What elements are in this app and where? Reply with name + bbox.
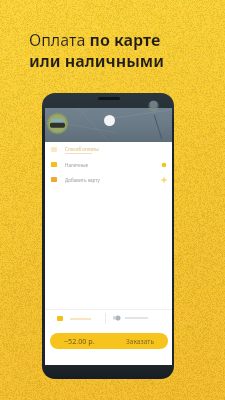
button[interactable]: My location	[104, 115, 115, 126]
button[interactable]	[57, 316, 91, 321]
button[interactable]: Способ оплаты	[45, 142, 172, 157]
staticText: или наличными	[29, 50, 165, 72]
button[interactable]: Добавить карту	[45, 172, 172, 187]
button[interactable]: Наличные	[45, 157, 172, 172]
staticText: Способ оплаты	[65, 146, 99, 152]
staticText: Оплата по карте	[29, 29, 161, 51]
button[interactable]: ~52.00 р.	[50, 333, 168, 349]
button[interactable]	[113, 315, 148, 321]
staticText: Заказать	[126, 337, 154, 346]
staticText: ~52.00 р.	[64, 336, 95, 346]
staticText: Наличные	[65, 162, 89, 168]
staticText: Добавить карту	[65, 177, 100, 183]
